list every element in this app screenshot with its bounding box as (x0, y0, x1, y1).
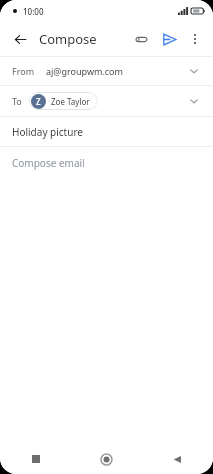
staticText: Holiday picture (12, 125, 83, 139)
button[interactable]: Compose email (0, 147, 213, 444)
staticText: 10:00 (23, 6, 44, 17)
button[interactable]: Z (29, 92, 98, 110)
button[interactable]: More options (184, 28, 206, 50)
button[interactable]: Back (7, 26, 33, 52)
button[interactable]: Send (156, 26, 182, 52)
staticText: From (12, 65, 35, 77)
button[interactable]: Back (142, 444, 213, 474)
button[interactable]: Recents (0, 444, 71, 474)
button[interactable]: Attach file (129, 27, 153, 51)
staticText: To (12, 95, 22, 107)
staticText: Zoe Taylor (51, 96, 90, 107)
button[interactable]: Home (71, 444, 142, 474)
staticText: aj@groupwm.com (46, 65, 123, 77)
button[interactable]: Holiday picture (0, 117, 213, 146)
button[interactable]: To (0, 86, 213, 116)
staticText: Compose (39, 30, 97, 48)
button[interactable]: From (0, 57, 213, 85)
staticText: Z (36, 96, 41, 107)
staticText: Compose email (12, 156, 85, 170)
